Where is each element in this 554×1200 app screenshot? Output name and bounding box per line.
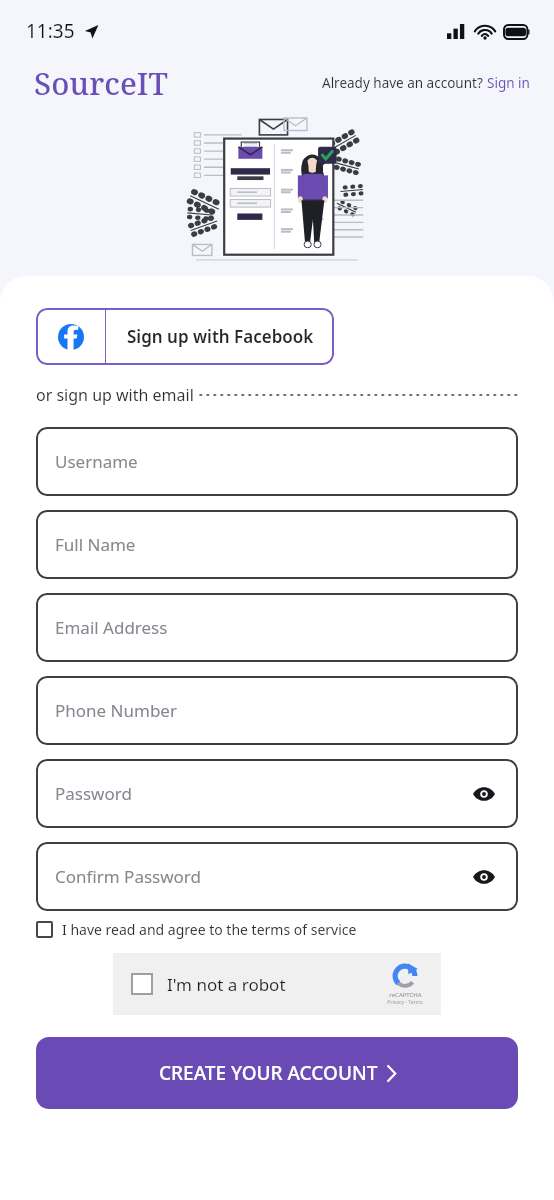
button[interactable]: Sign up with Facebook	[36, 308, 334, 365]
staticText: Email Address	[55, 616, 168, 639]
button[interactable]: I have read and agree to the terms of se…	[36, 920, 518, 939]
button[interactable]: Full Name	[36, 510, 518, 579]
staticText: Confirm Password	[55, 865, 201, 888]
staticText: CREATE YOUR ACCOUNT	[159, 1060, 378, 1086]
staticText: Already have an account?	[322, 74, 487, 92]
staticText: 11:35	[26, 18, 75, 44]
staticText: I have read and agree to the terms of se…	[62, 920, 357, 939]
button[interactable]: Username	[36, 427, 518, 496]
staticText: Username	[55, 450, 138, 473]
button[interactable]: CREATE YOUR ACCOUNT	[36, 1037, 518, 1109]
button[interactable]: Phone Number	[36, 676, 518, 745]
button[interactable]: Show password	[469, 862, 499, 892]
staticText: reCAPTCHA	[389, 991, 422, 999]
button[interactable]: Sign in	[487, 74, 530, 92]
button[interactable]: Password	[36, 759, 518, 828]
staticText: Phone Number	[55, 699, 177, 722]
staticText: or sign up with email	[36, 384, 194, 406]
staticText: Password	[55, 782, 132, 805]
button[interactable]: Show password	[469, 779, 499, 809]
staticText: SourceIT	[34, 62, 168, 104]
button[interactable]: I'm not a robot	[113, 953, 441, 1015]
staticText: Privacy - Terms	[387, 999, 423, 1006]
staticText: Sign up with Facebook	[127, 325, 314, 348]
staticText: Full Name	[55, 533, 136, 556]
button[interactable]: Confirm Password	[36, 842, 518, 911]
staticText: I'm not a robot	[167, 973, 286, 996]
staticText: Sign in	[487, 74, 530, 92]
button[interactable]: Email Address	[36, 593, 518, 662]
